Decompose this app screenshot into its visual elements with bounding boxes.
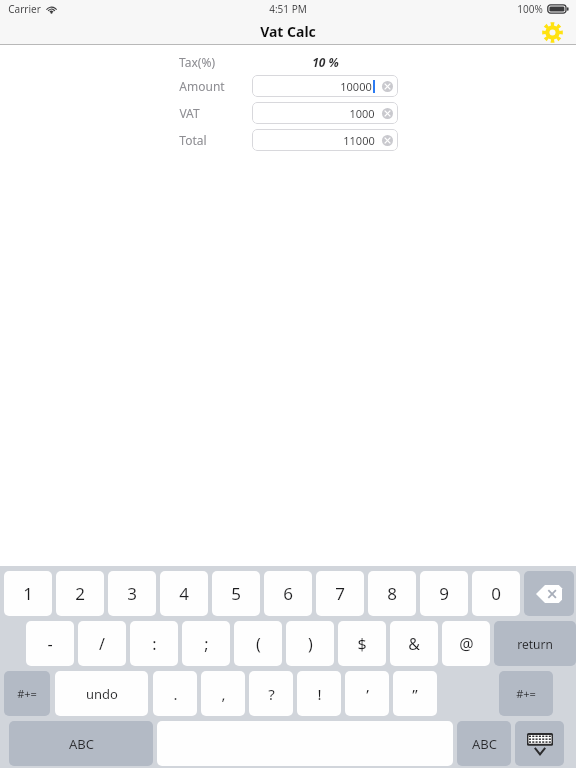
button[interactable]: 11000: [252, 129, 398, 151]
staticText: 2: [75, 582, 85, 605]
staticText: 6: [283, 582, 293, 605]
button[interactable]: 7: [316, 571, 364, 616]
staticText: 1: [23, 582, 33, 605]
button[interactable]: ’: [345, 671, 389, 716]
button[interactable]: :: [130, 621, 178, 666]
staticText: ;: [204, 633, 209, 655]
staticText: 5: [231, 582, 241, 605]
button[interactable]: ): [286, 621, 334, 666]
button[interactable]: #+=: [4, 671, 50, 716]
staticText: 8: [387, 582, 397, 605]
button[interactable]: (: [234, 621, 282, 666]
staticText: (: [256, 633, 261, 655]
staticText: 7: [335, 582, 345, 605]
staticText: 4:51 PM: [269, 2, 307, 16]
button[interactable]: 6: [264, 571, 312, 616]
staticText: #+=: [17, 686, 37, 701]
staticText: undo: [86, 685, 118, 703]
button[interactable]: 1: [4, 571, 52, 616]
staticText: ”: [412, 684, 418, 704]
staticText: Tax(%): [179, 54, 215, 70]
button[interactable]: Settings: [540, 20, 564, 44]
staticText: 1000: [349, 106, 375, 121]
button[interactable]: #+=: [499, 671, 553, 716]
staticText: Carrier: [8, 2, 41, 16]
button[interactable]: ”: [393, 671, 437, 716]
button[interactable]: $: [338, 621, 386, 666]
button[interactable]: Clear Amount: [376, 75, 398, 97]
button[interactable]: Clear VAT: [376, 102, 398, 124]
button[interactable]: ;: [182, 621, 230, 666]
staticText: 3: [127, 582, 137, 605]
button[interactable]: Backspace: [524, 571, 574, 616]
button[interactable]: 2: [56, 571, 104, 616]
staticText: Vat Calc: [260, 22, 316, 41]
staticText: ?: [268, 684, 275, 704]
button[interactable]: 3: [108, 571, 156, 616]
staticText: 100%: [517, 2, 543, 16]
button[interactable]: -: [26, 621, 74, 666]
button[interactable]: 4: [160, 571, 208, 616]
staticText: return: [517, 636, 553, 652]
staticText: VAT: [179, 105, 200, 121]
button[interactable]: 5: [212, 571, 260, 616]
staticText: 4: [179, 582, 189, 605]
staticText: ): [308, 633, 313, 655]
button[interactable]: ,: [201, 671, 245, 716]
button[interactable]: /: [78, 621, 126, 666]
staticText: .: [173, 684, 178, 704]
button[interactable]: 0: [472, 571, 520, 616]
button[interactable]: undo: [55, 671, 148, 716]
button[interactable]: .: [153, 671, 197, 716]
staticText: #+=: [516, 686, 536, 701]
staticText: :: [152, 633, 157, 655]
staticText: @: [459, 633, 474, 655]
button[interactable]: 1000: [252, 102, 398, 124]
staticText: 9: [439, 582, 449, 605]
button[interactable]: 10000: [252, 75, 398, 97]
staticText: 11000: [343, 133, 375, 148]
staticText: 10000: [340, 79, 372, 94]
staticText: Amount: [179, 78, 225, 94]
staticText: ABC: [69, 735, 94, 753]
staticText: 0: [491, 582, 501, 605]
button[interactable]: ?: [249, 671, 293, 716]
staticText: &: [408, 633, 420, 655]
staticText: ABC: [472, 735, 497, 753]
button[interactable]: Hide keyboard: [515, 721, 564, 766]
button[interactable]: !: [297, 671, 341, 716]
button[interactable]: 8: [368, 571, 416, 616]
button[interactable]: &: [390, 621, 438, 666]
staticText: /: [99, 633, 105, 655]
button[interactable]: 9: [420, 571, 468, 616]
staticText: ,: [221, 684, 226, 704]
button[interactable]: ABC: [457, 721, 511, 766]
button[interactable]: @: [442, 621, 490, 666]
button[interactable]: return: [494, 621, 576, 666]
staticText: Total: [179, 132, 207, 148]
button[interactable]: Clear Total: [376, 129, 398, 151]
staticText: 10 %: [312, 54, 339, 70]
staticText: $: [357, 633, 367, 655]
staticText: -: [47, 633, 53, 655]
staticText: ’: [366, 684, 369, 704]
staticText: !: [317, 684, 322, 704]
button[interactable]: ABC: [9, 721, 153, 766]
